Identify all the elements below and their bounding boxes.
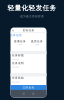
staticText: 按次结算	[18, 44, 22, 45]
staticText: 任务信息	[10, 33, 22, 37]
staticText: 请输入奖励金额	[12, 81, 19, 83]
staticText: 普通任务	[14, 40, 26, 43]
staticText: 立即发布	[22, 86, 34, 89]
staticText: 任务说明	[12, 61, 24, 65]
staticText: 任务奖励	[12, 76, 24, 79]
staticText: 轻量化轻发任务	[7, 4, 56, 12]
staticText: 完成领取	[35, 44, 39, 45]
staticText: 成为最主管的管理	[20, 15, 44, 18]
staticText: 发布任务	[22, 29, 34, 32]
staticText: 任务标题	[12, 54, 24, 57]
staticText: 悬赏任务	[31, 40, 43, 43]
staticText: 请输入任务说明	[12, 66, 19, 68]
staticText: 请输入任务标题	[12, 59, 19, 60]
